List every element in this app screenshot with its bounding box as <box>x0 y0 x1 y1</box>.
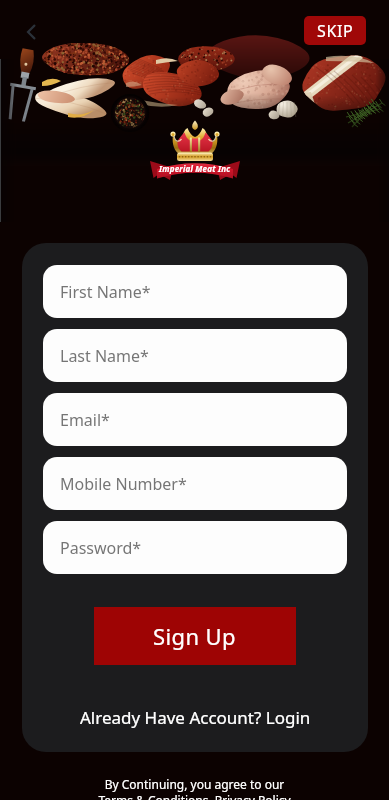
staticText: Mobile Number* <box>60 473 187 495</box>
staticText: Password* <box>60 537 142 559</box>
button[interactable]: Back <box>12 12 52 52</box>
staticText: Sign Up <box>153 621 237 651</box>
button[interactable]: Email* <box>43 393 347 446</box>
button[interactable]: First Name* <box>43 265 347 318</box>
staticText: Imperial Meat Inc <box>159 163 231 174</box>
button[interactable]: Last Name* <box>43 329 347 382</box>
staticText: SKIP <box>317 20 354 42</box>
button[interactable]: Already Have Account? Login <box>22 697 368 737</box>
staticText: Email* <box>60 409 110 431</box>
staticText: Last Name* <box>60 345 149 367</box>
button[interactable]: Mobile Number* <box>43 457 347 510</box>
button[interactable]: SKIP <box>304 16 366 45</box>
button[interactable]: Password* <box>43 521 347 574</box>
staticText: Already Have Account? Login <box>80 706 311 729</box>
staticText: By Continuing, you agree to our Terms & … <box>98 776 291 800</box>
button[interactable]: Sign Up <box>94 607 296 665</box>
staticText: First Name* <box>60 281 151 303</box>
